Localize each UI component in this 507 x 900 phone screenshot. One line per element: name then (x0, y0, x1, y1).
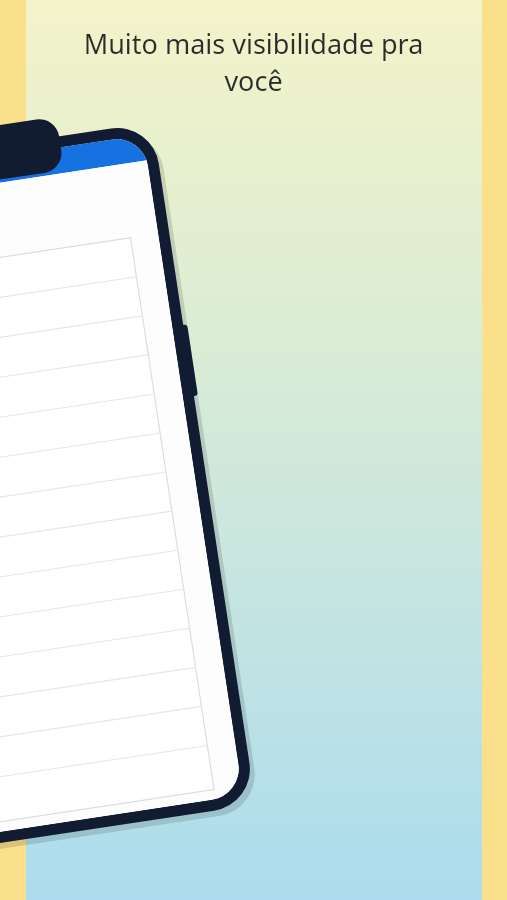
button[interactable]: Muito mais visibilidade pra você (0, 0, 507, 900)
